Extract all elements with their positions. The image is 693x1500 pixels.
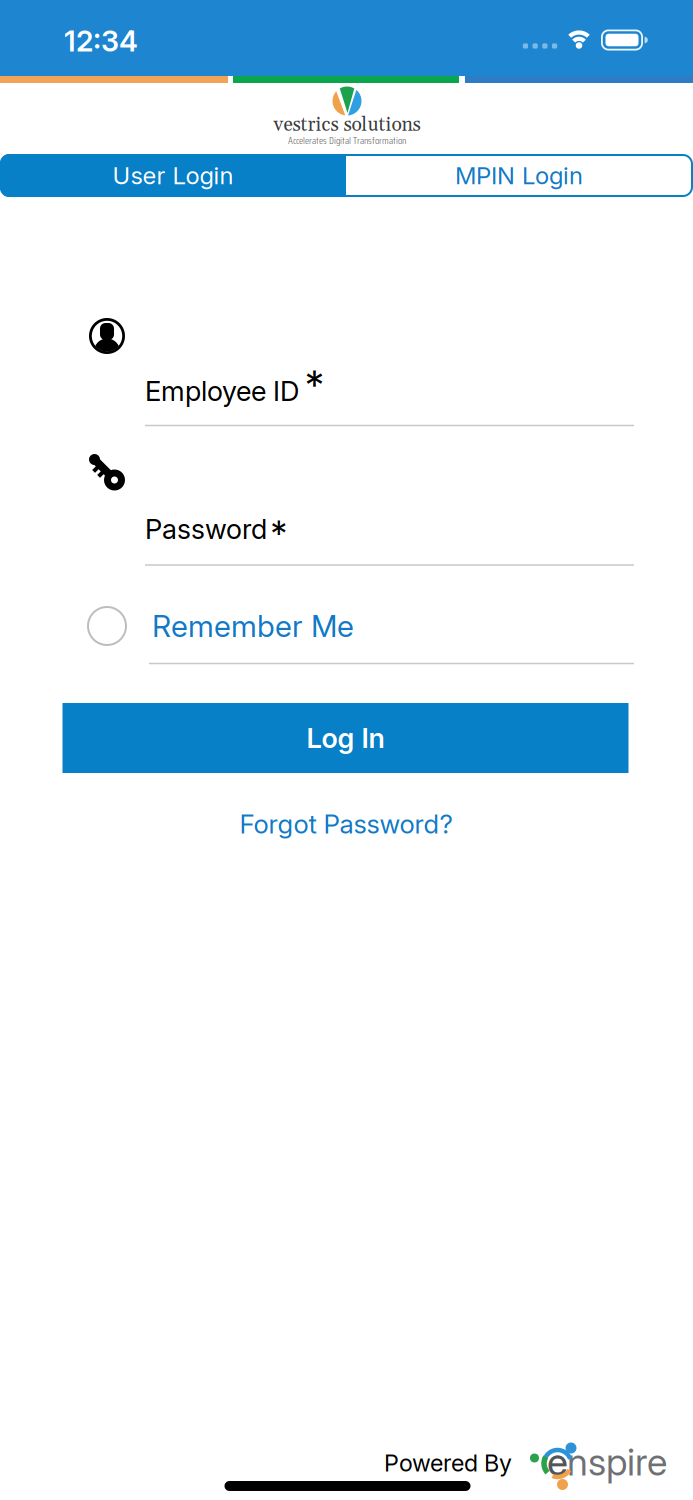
staticText: Password xyxy=(145,512,267,546)
staticText: Employee ID xyxy=(145,374,299,408)
staticText: MPIN Login xyxy=(455,161,583,190)
staticText: * xyxy=(270,513,287,555)
staticText: 12:34 xyxy=(64,24,138,58)
button[interactable]: Employee ID xyxy=(145,360,634,426)
button[interactable]: MPIN Login xyxy=(349,156,689,195)
staticText: User Login xyxy=(112,161,233,190)
staticText: Powered By xyxy=(384,1449,512,1477)
button[interactable]: Forgot Password? xyxy=(136,802,556,846)
staticText: e xyxy=(547,1439,567,1485)
staticText: * xyxy=(305,361,324,409)
staticText: Log In xyxy=(306,721,384,755)
button[interactable]: User Login xyxy=(0,154,346,197)
staticText: Forgot Password? xyxy=(239,808,452,840)
button[interactable]: Password xyxy=(145,500,634,566)
button[interactable]: Log In xyxy=(62,703,628,773)
staticText: vestrics solutions xyxy=(273,113,420,137)
staticText: enspire xyxy=(547,1439,667,1485)
button[interactable]: Remember Me xyxy=(87,602,647,650)
staticText: Accelerates Digital Transformation xyxy=(288,133,406,148)
staticText: Remember Me xyxy=(152,608,354,644)
